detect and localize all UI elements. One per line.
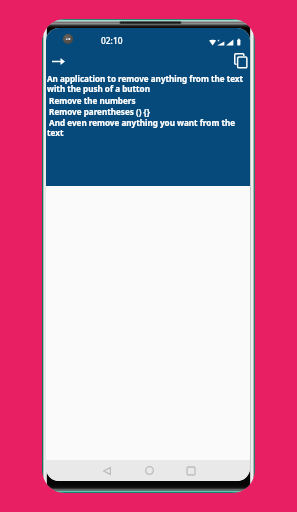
staticText: Remove parentheses () {} [47,106,150,117]
staticText: An application to remove anything from t… [47,73,249,95]
staticText: Remove the numbers [47,95,136,106]
staticText: And even remove anything you want from t… [47,117,249,139]
button[interactable]: Back [95,460,119,481]
staticText: 02:10 [101,35,123,46]
button[interactable]: Home [137,460,161,481]
button[interactable]: Forward [48,51,68,71]
button[interactable]: Recents [179,460,203,481]
button[interactable]: Copy [230,50,250,70]
